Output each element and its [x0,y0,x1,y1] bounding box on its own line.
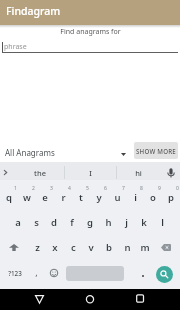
staticText: d [51,216,57,229]
staticText: r [61,191,66,204]
button[interactable] [27,207,45,231]
staticText: f [70,216,74,229]
staticText: a [15,216,21,229]
staticText: p [168,191,174,204]
staticText: j [125,216,128,229]
button[interactable] [36,182,54,206]
button[interactable] [117,232,135,256]
staticText: ?123 [8,269,22,278]
button[interactable] [128,262,147,283]
button[interactable] [126,182,144,206]
button[interactable] [153,207,171,231]
staticText: Findagram [6,4,61,18]
staticText: , [35,266,38,278]
staticText: v [88,241,94,254]
button[interactable]: SHOW MORE [134,142,178,159]
button[interactable] [156,266,173,283]
button[interactable] [108,182,126,206]
button[interactable] [0,182,18,206]
staticText: b [106,241,112,254]
button[interactable] [99,232,117,256]
staticText: t [79,191,83,204]
staticText: 7 [122,185,125,192]
staticText: g [87,216,93,229]
button[interactable] [14,162,64,180]
staticText: s [34,216,39,229]
button[interactable] [162,182,180,206]
staticText: Find anagrams for [60,27,121,37]
staticText: All Anagrams [5,147,55,158]
staticText: I [89,168,92,178]
button[interactable] [27,232,45,256]
staticText: the [34,168,46,178]
staticText: hi [135,168,142,178]
button[interactable] [135,207,153,231]
button[interactable] [45,232,63,256]
button[interactable] [81,207,99,231]
button[interactable] [18,182,36,206]
button[interactable] [2,262,26,283]
button[interactable] [90,182,108,206]
staticText: 3 [50,185,53,192]
staticText: x [52,241,58,254]
staticText: u [114,191,121,204]
staticText: q [6,191,12,204]
button[interactable] [4,170,7,175]
staticText: h [105,216,112,229]
button[interactable] [50,269,58,277]
button[interactable] [9,244,19,251]
button[interactable] [64,162,116,180]
staticText: i [134,191,137,204]
staticText: 1 [14,185,17,192]
button[interactable] [72,182,90,206]
staticText: SHOW MORE [136,147,176,155]
staticText: 8 [140,185,143,192]
staticText: o [150,191,156,204]
button[interactable] [86,295,95,304]
button[interactable] [167,168,175,178]
button[interactable] [135,232,153,256]
button[interactable] [99,207,117,231]
staticText: phrase [4,42,27,52]
staticText: z [35,241,40,254]
staticText: 0 [176,185,179,192]
button[interactable] [136,294,144,303]
staticText: c [71,241,76,254]
button[interactable] [35,295,44,304]
button[interactable] [54,182,72,206]
staticText: 6 [104,185,107,192]
button[interactable] [116,162,158,180]
staticText: 5 [86,185,89,192]
button[interactable] [63,232,81,256]
button[interactable] [26,262,45,283]
staticText: y [96,191,102,204]
staticText: 4 [68,185,71,192]
staticText: m [140,241,150,254]
button[interactable] [81,232,99,256]
button[interactable] [9,207,27,231]
button[interactable] [144,182,162,206]
staticText: w [23,191,31,204]
staticText: l [161,216,164,229]
button[interactable]: All Anagrams [0,142,130,159]
button[interactable] [45,207,63,231]
staticText: 9 [158,185,161,192]
button[interactable] [63,207,81,231]
staticText: k [141,216,147,229]
staticText: 2 [32,185,35,192]
button[interactable] [161,244,171,251]
staticText: n [124,241,131,254]
button[interactable] [117,207,135,231]
staticText: e [42,191,48,204]
